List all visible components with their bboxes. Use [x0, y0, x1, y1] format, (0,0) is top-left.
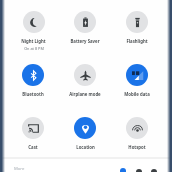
button[interactable]: Night Light — [20, 11, 47, 51]
staticText: Bluetooth — [22, 91, 44, 97]
staticText: Cast — [28, 144, 38, 150]
staticText: Battery Saver — [70, 38, 100, 44]
staticText: On at 8 PM — [24, 46, 44, 51]
staticText: Airplane mode — [69, 91, 101, 97]
staticText: Night Light — [21, 38, 46, 44]
other: Flashlight — [126, 11, 148, 33]
button[interactable]: Location — [73, 117, 97, 150]
button[interactable]: Cast — [21, 117, 45, 150]
other: Mobile data — [126, 64, 148, 86]
other: Bluetooth — [22, 64, 44, 86]
other: Cast — [22, 117, 44, 139]
staticText: Hotspot — [128, 144, 146, 150]
staticText: Flashlight — [126, 38, 148, 44]
other: Night Light — [23, 11, 45, 33]
button[interactable]: Power — [136, 169, 142, 172]
other: Battery Saver — [74, 11, 96, 33]
button[interactable]: Battery Saver — [69, 11, 101, 44]
button[interactable]: Edit — [120, 168, 126, 172]
button[interactable]: Settings — [151, 169, 157, 172]
other: Airplane mode — [74, 64, 96, 86]
button[interactable]: Bluetooth — [21, 64, 45, 97]
button[interactable]: Hotspot — [125, 117, 149, 150]
other: Hotspot — [126, 117, 148, 139]
other: Location — [74, 117, 96, 139]
staticText: Mobile data — [124, 91, 150, 97]
staticText: More — [14, 166, 25, 172]
staticText: Location — [76, 144, 95, 150]
button[interactable]: More — [14, 166, 27, 172]
button[interactable]: Airplane mode — [68, 64, 102, 97]
button[interactable]: Flashlight — [125, 11, 149, 44]
button[interactable]: Mobile data — [123, 64, 151, 97]
